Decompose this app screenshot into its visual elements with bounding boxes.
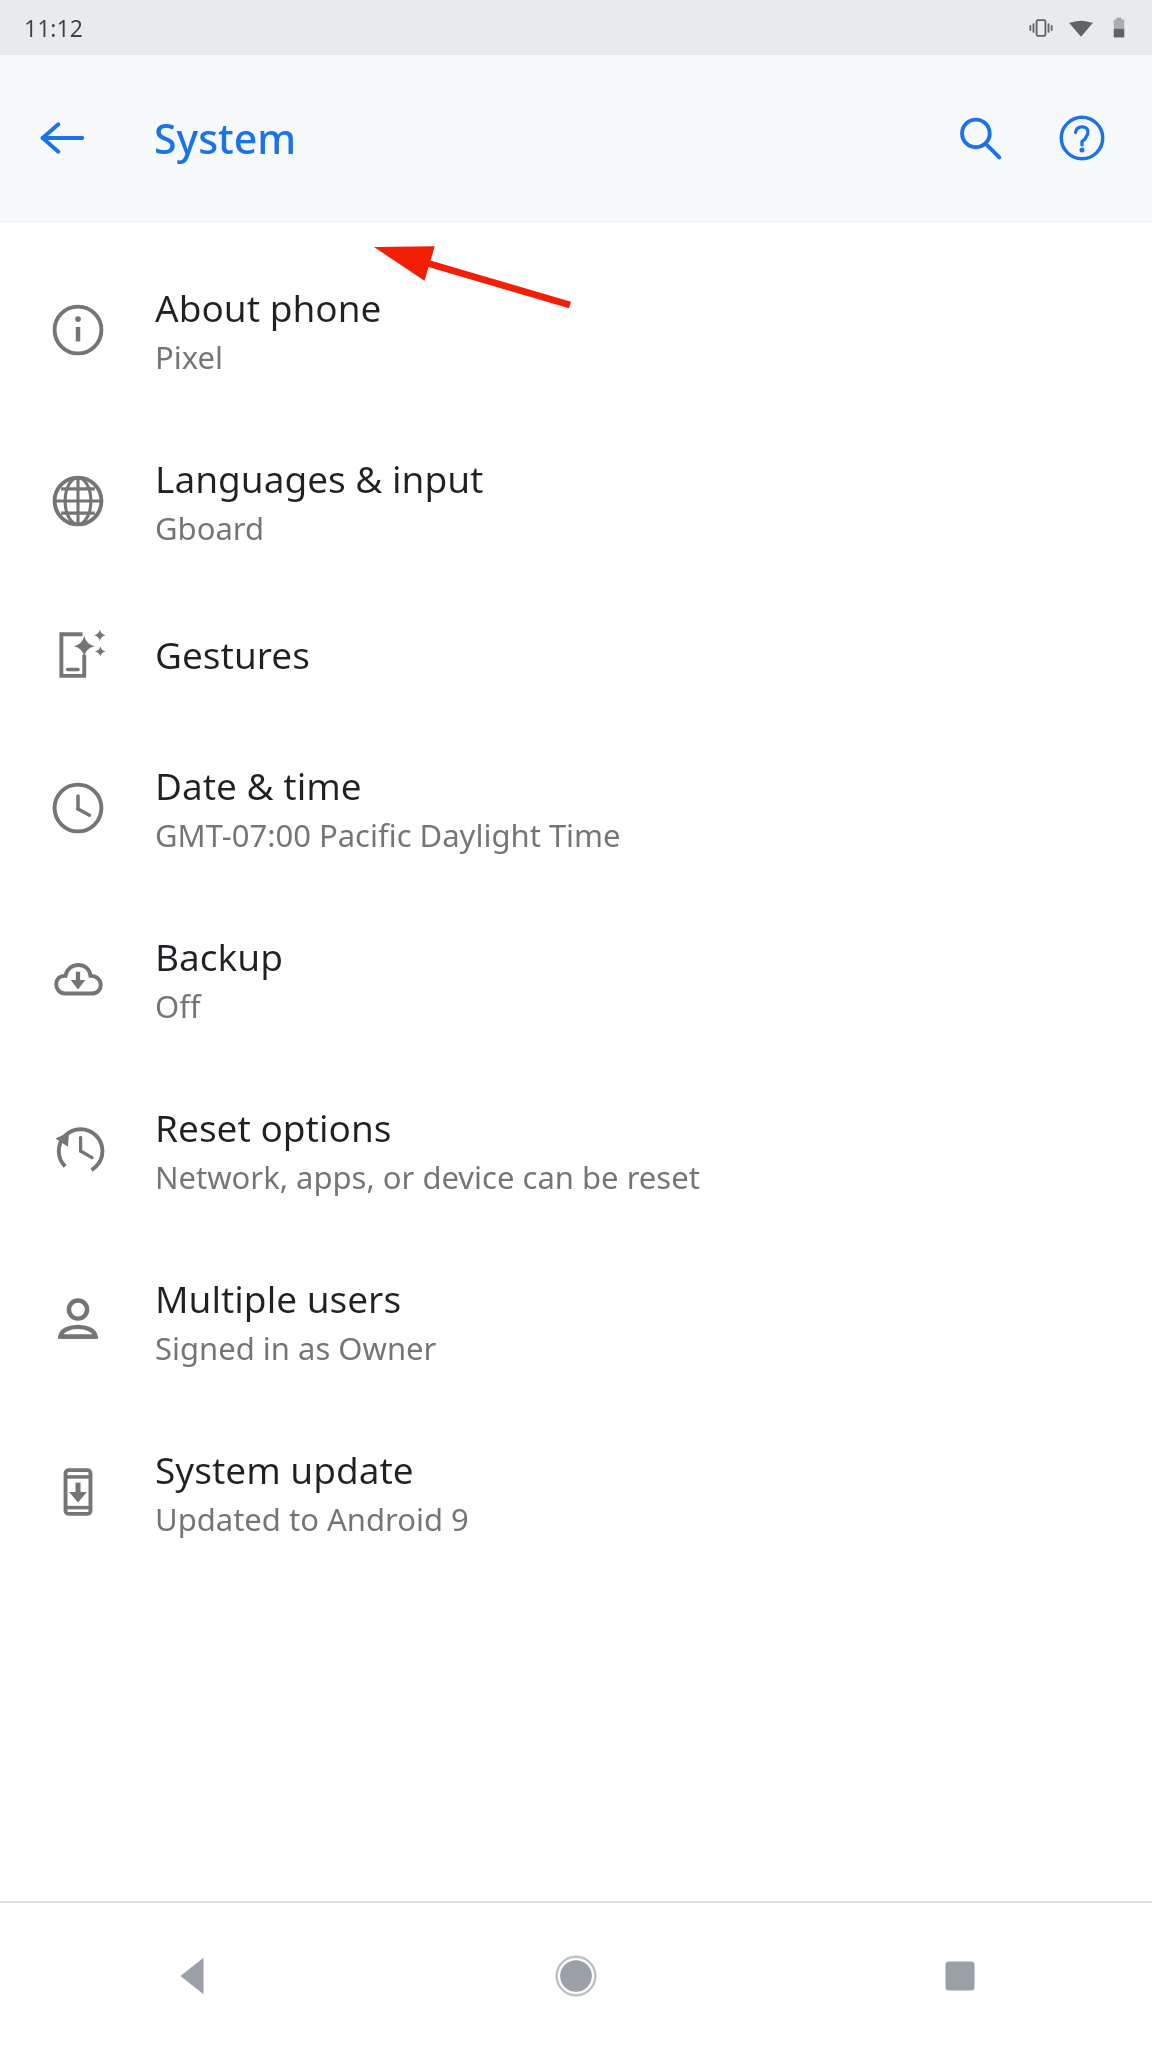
button[interactable]: Search	[936, 94, 1024, 182]
button[interactable]: Reset options	[0, 1064, 1152, 1235]
staticText: Off	[155, 985, 201, 1027]
staticText: System	[154, 110, 297, 166]
staticText: Date & time	[155, 760, 362, 810]
staticText: GMT-07:00 Pacific Daylight Time	[155, 814, 621, 856]
staticText: Languages & input	[155, 453, 484, 503]
staticText: Gestures	[155, 629, 310, 679]
staticText: System update	[155, 1444, 414, 1494]
button[interactable]: Multiple users	[0, 1235, 1152, 1406]
button[interactable]: Backup	[0, 893, 1152, 1064]
button[interactable]: Help	[1038, 94, 1126, 182]
button[interactable]: Back	[20, 96, 104, 180]
staticText: About phone	[155, 282, 382, 332]
staticText: Reset options	[155, 1102, 392, 1152]
button[interactable]: About phone	[0, 244, 1152, 415]
staticText: Gboard	[155, 507, 265, 549]
button[interactable]: Gestures	[0, 586, 1152, 722]
staticText: Network, apps, or device can be reset	[155, 1156, 700, 1198]
staticText: Backup	[155, 931, 283, 981]
button[interactable]: Date & time	[0, 722, 1152, 893]
staticText: Pixel	[155, 336, 224, 378]
button[interactable]: Languages & input	[0, 415, 1152, 586]
staticText: Updated to Android 9	[155, 1498, 469, 1540]
button[interactable]: Recent apps	[768, 1903, 1152, 2048]
button[interactable]: Back	[0, 1903, 384, 2048]
staticText: 11:12	[24, 12, 83, 43]
staticText: Multiple users	[155, 1273, 402, 1323]
staticText: Signed in as Owner	[155, 1327, 437, 1369]
button[interactable]: Home	[384, 1903, 768, 2048]
button[interactable]: System update	[0, 1406, 1152, 1577]
